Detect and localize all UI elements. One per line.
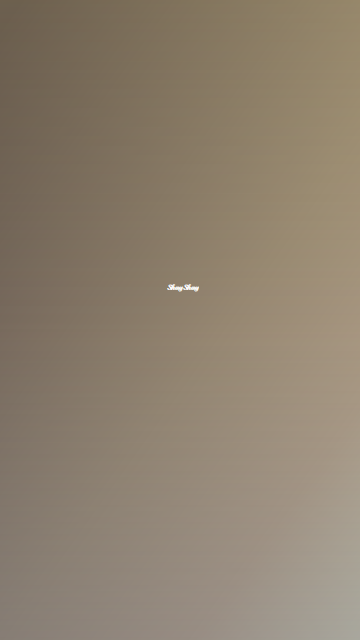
staticText: ShayShay — [167, 282, 199, 292]
staticText: ShayShay — [167, 282, 199, 292]
staticText: ShayShay — [167, 282, 199, 292]
